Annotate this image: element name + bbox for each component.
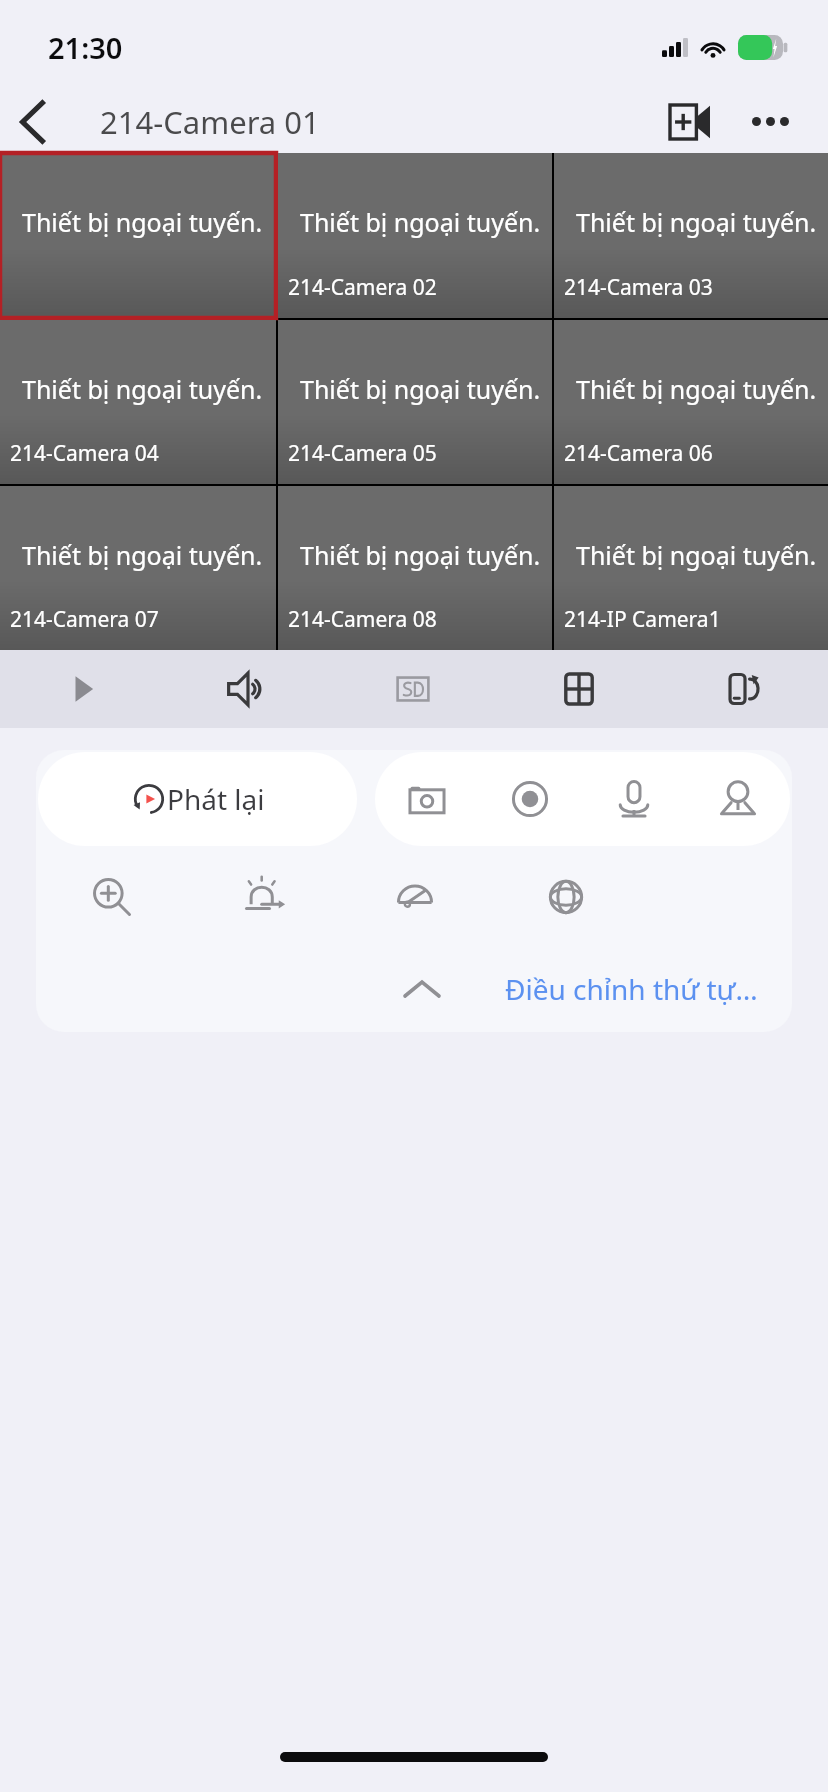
button[interactable]: Alarm output (188, 848, 339, 946)
button[interactable]: Thiết bị ngoại tuyến. (0, 153, 276, 318)
staticText: 214-Camera 02 (288, 273, 437, 302)
staticText: Thiết bị ngoại tuyến. (576, 205, 817, 239)
button[interactable]: Play (0, 650, 165, 728)
staticText: Thiết bị ngoại tuyến. (300, 372, 541, 406)
button[interactable]: Microphone (582, 752, 686, 846)
button[interactable]: 3D positioning (490, 848, 641, 946)
staticText: Thiết bị ngoại tuyến. (300, 538, 541, 572)
staticText: Điều chỉnh thứ tự… (505, 970, 758, 1008)
button[interactable]: Split screen layout (496, 650, 662, 728)
staticText: 214-Camera 03 (564, 273, 713, 302)
staticText: 214-Camera 07 (10, 605, 159, 634)
button[interactable]: Thiết bị ngoại tuyến. (0, 486, 276, 650)
button[interactable]: Digital zoom (36, 848, 188, 946)
button[interactable]: PTZ control (686, 752, 790, 846)
button[interactable]: Thiết bị ngoại tuyến. (278, 486, 552, 650)
staticText: 214-Camera 05 (288, 439, 437, 468)
button[interactable]: Thiết bị ngoại tuyến. (554, 320, 828, 484)
button[interactable]: Back (0, 90, 66, 153)
staticText: 21:30 (48, 28, 123, 67)
button[interactable]: Thiết bị ngoại tuyến. (554, 486, 828, 650)
button[interactable]: Add camera (658, 90, 722, 153)
staticText: 214-Camera 04 (10, 439, 159, 468)
staticText: Thiết bị ngoại tuyến. (22, 538, 263, 572)
button[interactable]: Điều chỉnh thứ tự… (505, 970, 758, 1008)
staticText: 214-Camera 01 (100, 101, 320, 143)
button[interactable]: Thiết bị ngoại tuyến. (0, 320, 276, 484)
staticText: 214-Camera 06 (564, 439, 713, 468)
staticText: 214-IP Camera1 (564, 605, 721, 634)
staticText: Thiết bị ngoại tuyến. (576, 372, 817, 406)
staticText: Phát lại (167, 780, 265, 818)
button[interactable]: Volume (165, 650, 330, 728)
button[interactable]: Stream quality SD (330, 650, 496, 728)
button[interactable]: Thiết bị ngoại tuyến. (554, 153, 828, 318)
button[interactable]: Phát lại (38, 752, 357, 846)
button[interactable]: More options (738, 90, 802, 153)
staticText: Thiết bị ngoại tuyến. (22, 372, 263, 406)
button[interactable]: Snapshot (375, 752, 478, 846)
button[interactable]: Collapse (379, 946, 465, 1032)
staticText: 214-Camera 08 (288, 605, 437, 634)
staticText: Thiết bị ngoại tuyến. (300, 205, 541, 239)
button[interactable]: Cast to device (662, 650, 828, 728)
button[interactable]: Fisheye view (339, 848, 490, 946)
button[interactable]: Record (478, 752, 582, 846)
staticText: Thiết bị ngoại tuyến. (576, 538, 817, 572)
button[interactable]: Thiết bị ngoại tuyến. (278, 153, 552, 318)
button[interactable]: Thiết bị ngoại tuyến. (278, 320, 552, 484)
staticText: Thiết bị ngoại tuyến. (22, 205, 263, 239)
